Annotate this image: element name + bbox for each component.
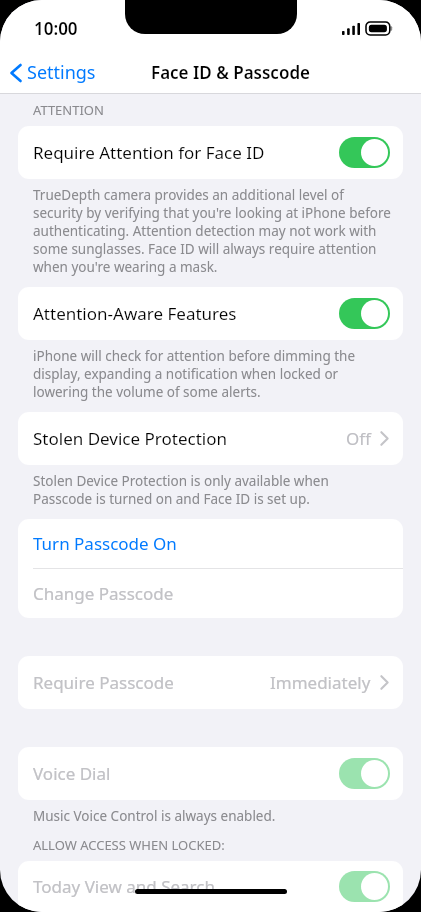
staticText: Today View and Search xyxy=(33,875,339,898)
button[interactable]: Turn Passcode On xyxy=(18,519,403,568)
staticText: 10:00 xyxy=(34,17,78,40)
staticText: Turn Passcode On xyxy=(33,532,177,555)
button[interactable]: Voice Dial xyxy=(18,747,403,800)
button[interactable]: Today View and Search xyxy=(18,861,403,912)
staticText: TrueDepth camera provides an additional … xyxy=(33,186,391,276)
button[interactable]: Attention-Aware Features xyxy=(18,287,403,340)
staticText: Require Passcode xyxy=(33,671,270,694)
staticText: Face ID & Passcode xyxy=(151,61,310,84)
staticText: Settings xyxy=(27,60,96,85)
staticText: Require Attention for Face ID xyxy=(33,141,339,164)
staticText: Voice Dial xyxy=(33,762,339,785)
other: Toggle xyxy=(339,871,390,902)
other: Toggle xyxy=(339,137,390,168)
staticText: Stolen Device Protection xyxy=(33,427,346,450)
button[interactable]: Stolen Device Protection xyxy=(18,412,403,465)
staticText: Attention-Aware Features xyxy=(33,302,339,325)
button[interactable]: Require Attention for Face ID xyxy=(18,126,403,179)
staticText: Off xyxy=(346,427,371,450)
staticText: Immediately xyxy=(270,671,371,694)
staticText: ALLOW ACCESS WHEN LOCKED: xyxy=(33,836,225,854)
other: Toggle xyxy=(339,758,390,789)
other: Toggle xyxy=(339,298,390,329)
staticText: Change Passcode xyxy=(33,582,174,605)
button[interactable]: Change Passcode xyxy=(18,569,403,618)
staticText: Stolen Device Protection is only availab… xyxy=(33,472,391,508)
staticText: ATTENTION xyxy=(33,101,104,119)
staticText: Music Voice Control is always enabled. xyxy=(33,807,276,825)
button[interactable]: Settings xyxy=(0,56,104,89)
button[interactable]: Require Passcode xyxy=(18,656,403,709)
staticText: iPhone will check for attention before d… xyxy=(33,347,391,401)
